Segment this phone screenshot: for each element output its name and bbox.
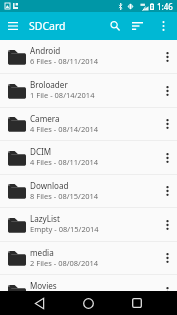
staticText: Download xyxy=(30,180,69,191)
staticText: 8 Files - 08/15/2014 xyxy=(30,191,99,201)
staticText: 6 Files - 08/11/2014 xyxy=(30,56,99,66)
button[interactable]: LazyList xyxy=(0,208,177,242)
staticText: Movies xyxy=(30,280,57,291)
staticText: 1 File - 08/14/2014 xyxy=(30,90,95,100)
staticText: Android xyxy=(30,45,61,56)
staticText: 2 Files - 08/08/2014 xyxy=(30,258,99,268)
button[interactable]: More options xyxy=(157,242,177,274)
button[interactable]: Search xyxy=(103,12,126,40)
button[interactable]: Home xyxy=(76,291,100,315)
button[interactable]: More options xyxy=(157,108,177,140)
staticText: 4 Files - 08/11/2014 xyxy=(30,157,99,167)
staticText: 4 Files - 08/14/2014 xyxy=(30,124,99,134)
staticText: LazyList xyxy=(30,213,60,224)
button[interactable]: More options xyxy=(157,208,177,241)
button[interactable]: Sort xyxy=(126,12,149,40)
button[interactable]: DCIM xyxy=(0,141,177,175)
button[interactable]: Broloader xyxy=(0,74,177,108)
button[interactable]: More options xyxy=(149,12,177,40)
staticText: media xyxy=(30,247,54,258)
button[interactable]: More options xyxy=(157,175,177,207)
button[interactable]: Android xyxy=(0,40,177,74)
staticText: SDCard xyxy=(29,19,66,33)
button[interactable]: Camera xyxy=(0,108,177,141)
button[interactable]: Back xyxy=(27,291,51,315)
button[interactable]: More options xyxy=(157,74,177,107)
button[interactable]: Download xyxy=(0,175,177,208)
button[interactable]: Menu xyxy=(0,13,26,39)
staticText: Empty - 08/15/2014 xyxy=(30,224,99,234)
button[interactable]: Movies xyxy=(0,275,177,309)
staticText: Camera xyxy=(30,113,60,124)
staticText: 1:46 xyxy=(157,1,173,12)
button[interactable]: Recent apps xyxy=(125,291,149,315)
staticText: Empty - 08/08/2014 xyxy=(30,291,99,301)
staticText: Broloader xyxy=(30,79,68,90)
button[interactable]: media xyxy=(0,242,177,275)
button[interactable]: More options xyxy=(157,275,177,308)
button[interactable]: More options xyxy=(157,40,177,73)
staticText: DCIM xyxy=(30,146,52,157)
button[interactable]: More options xyxy=(157,141,177,174)
